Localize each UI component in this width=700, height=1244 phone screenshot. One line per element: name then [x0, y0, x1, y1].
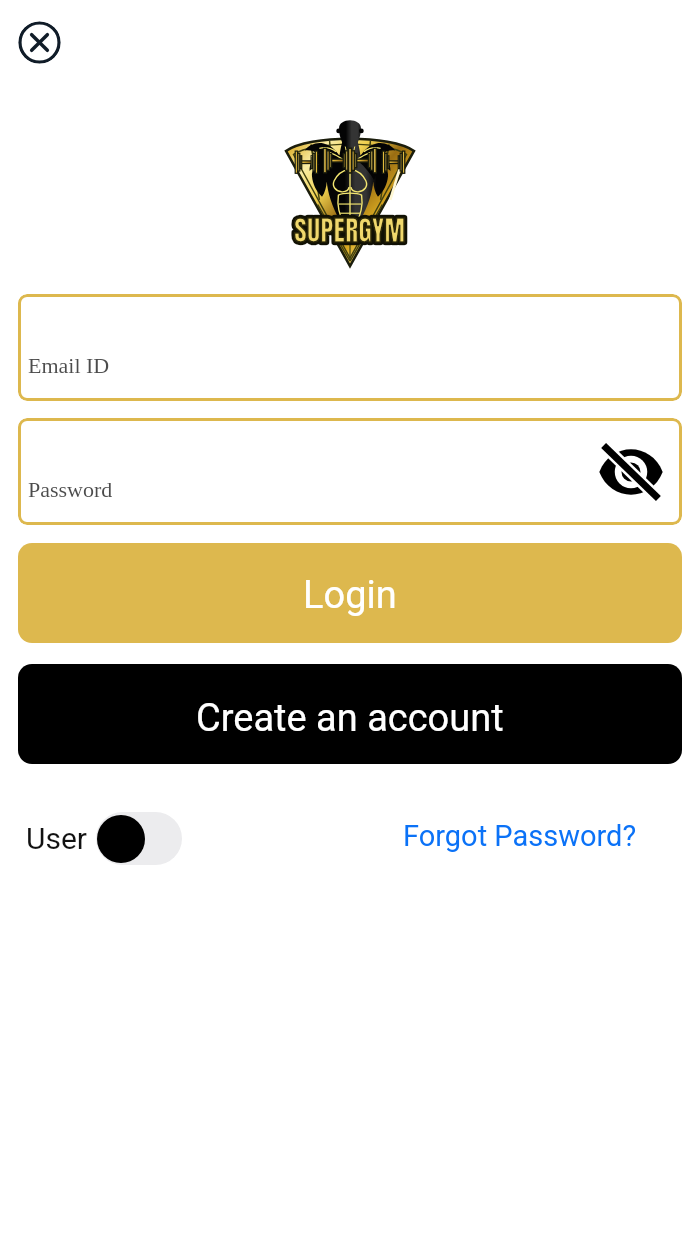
staticText: Email ID	[28, 353, 110, 377]
staticText: Password	[28, 477, 113, 501]
button[interactable]: Login	[18, 543, 682, 643]
staticText: User	[26, 821, 88, 856]
staticText: Create an account	[196, 696, 504, 741]
button[interactable]: Close	[18, 21, 61, 64]
button[interactable]: Forgot Password?	[403, 819, 637, 853]
staticText: Login	[303, 573, 397, 618]
button[interactable]: Email ID	[18, 294, 682, 401]
button[interactable]: User toggle	[96, 812, 182, 865]
staticText: Forgot Password?	[403, 819, 637, 853]
button[interactable]: Password	[18, 418, 682, 525]
button[interactable]: Show password	[598, 444, 664, 500]
button[interactable]: Create an account	[18, 664, 682, 764]
